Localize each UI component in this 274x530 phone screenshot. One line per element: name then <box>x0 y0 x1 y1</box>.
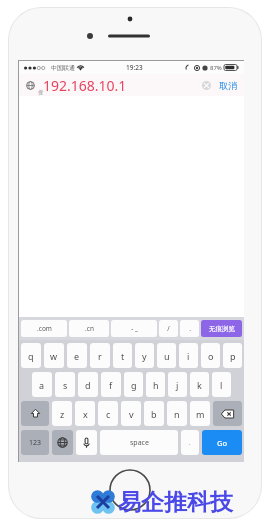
staticText: / <box>167 324 170 333</box>
staticText: m <box>196 408 205 420</box>
button[interactable]: o <box>201 343 220 368</box>
button[interactable]: Change keyboard <box>52 430 73 455</box>
staticText: .com <box>37 324 52 333</box>
button[interactable]: Clear text <box>200 79 213 92</box>
button[interactable]: x <box>75 401 95 426</box>
button[interactable]: z <box>52 401 72 426</box>
staticText: l <box>220 379 223 391</box>
staticText: 中国联通 <box>51 64 75 72</box>
staticText: 易企推科技 <box>118 488 233 517</box>
staticText: 19:23 <box>126 63 143 72</box>
staticText: 无痕浏览 <box>209 325 235 333</box>
button[interactable]: Dictation <box>76 430 97 455</box>
staticText: c <box>106 408 111 420</box>
button[interactable]: i <box>179 343 198 368</box>
staticText: 192.168.10.1 <box>43 76 127 95</box>
button[interactable]: j <box>168 372 187 397</box>
staticText: space <box>130 438 149 448</box>
button[interactable]: 无痕浏览 <box>201 320 242 337</box>
staticText: s <box>63 379 68 391</box>
button[interactable]: .cn <box>69 320 109 337</box>
staticText: - _ <box>131 324 138 333</box>
staticText: 87% <box>210 64 222 72</box>
button[interactable]: b <box>144 401 164 426</box>
button[interactable]: e <box>67 343 87 368</box>
staticText: . <box>189 439 191 447</box>
button[interactable]: d <box>78 372 98 397</box>
button[interactable]: .com <box>21 320 67 337</box>
button[interactable]: g <box>124 372 143 397</box>
button[interactable]: 123 <box>21 430 49 455</box>
staticText: 123 <box>29 438 42 448</box>
staticText: a <box>39 379 45 391</box>
button[interactable]: p <box>223 343 242 368</box>
staticText: p <box>230 350 236 362</box>
staticText: d <box>85 379 91 391</box>
button[interactable]: 取消 <box>217 78 239 93</box>
button[interactable]: c <box>98 401 118 426</box>
staticText: y <box>142 350 147 362</box>
staticText: .cn <box>85 324 94 333</box>
button[interactable]: s <box>55 372 75 397</box>
staticText: w <box>50 350 58 362</box>
button[interactable]: a <box>32 372 52 397</box>
button[interactable]: h <box>146 372 165 397</box>
staticText: f <box>109 379 113 391</box>
staticText: 取消 <box>219 80 237 91</box>
button[interactable]: Go <box>202 430 242 455</box>
button[interactable]: Shift <box>21 401 49 426</box>
staticText: x <box>83 408 88 420</box>
staticText: Go <box>217 438 227 448</box>
button[interactable]: f <box>101 372 121 397</box>
staticText: . <box>189 324 191 333</box>
button[interactable]: n <box>167 401 187 426</box>
button[interactable]: r <box>90 343 110 368</box>
button[interactable]: v <box>121 401 141 426</box>
staticText: r <box>98 350 102 362</box>
staticText: e <box>74 350 80 362</box>
button[interactable]: 搜 <box>38 76 200 95</box>
button[interactable]: m <box>190 401 210 426</box>
staticText: 搜 <box>38 89 43 95</box>
button[interactable]: l <box>212 372 231 397</box>
staticText: i <box>187 350 190 362</box>
staticText: j <box>176 379 179 391</box>
staticText: q <box>28 350 34 362</box>
staticText: h <box>153 379 159 391</box>
button[interactable]: Page settings <box>25 80 36 91</box>
button[interactable]: t <box>113 343 132 368</box>
staticText: v <box>129 408 134 420</box>
staticText: u <box>164 350 170 362</box>
button[interactable]: - _ <box>111 320 157 337</box>
button[interactable]: k <box>190 372 209 397</box>
staticText: t <box>121 350 125 362</box>
button[interactable]: space <box>100 430 178 455</box>
staticText: g <box>131 379 137 391</box>
button[interactable]: Backspace <box>213 401 242 426</box>
staticText: b <box>151 408 157 420</box>
button[interactable]: q <box>21 343 41 368</box>
button[interactable]: y <box>135 343 154 368</box>
staticText: z <box>60 408 65 420</box>
button[interactable]: / <box>159 320 178 337</box>
staticText: n <box>174 408 180 420</box>
button[interactable]: . <box>181 430 199 455</box>
button[interactable]: u <box>157 343 176 368</box>
button[interactable]: . <box>180 320 199 337</box>
staticText: o <box>208 350 214 362</box>
staticText: k <box>197 379 202 391</box>
button[interactable]: w <box>44 343 64 368</box>
